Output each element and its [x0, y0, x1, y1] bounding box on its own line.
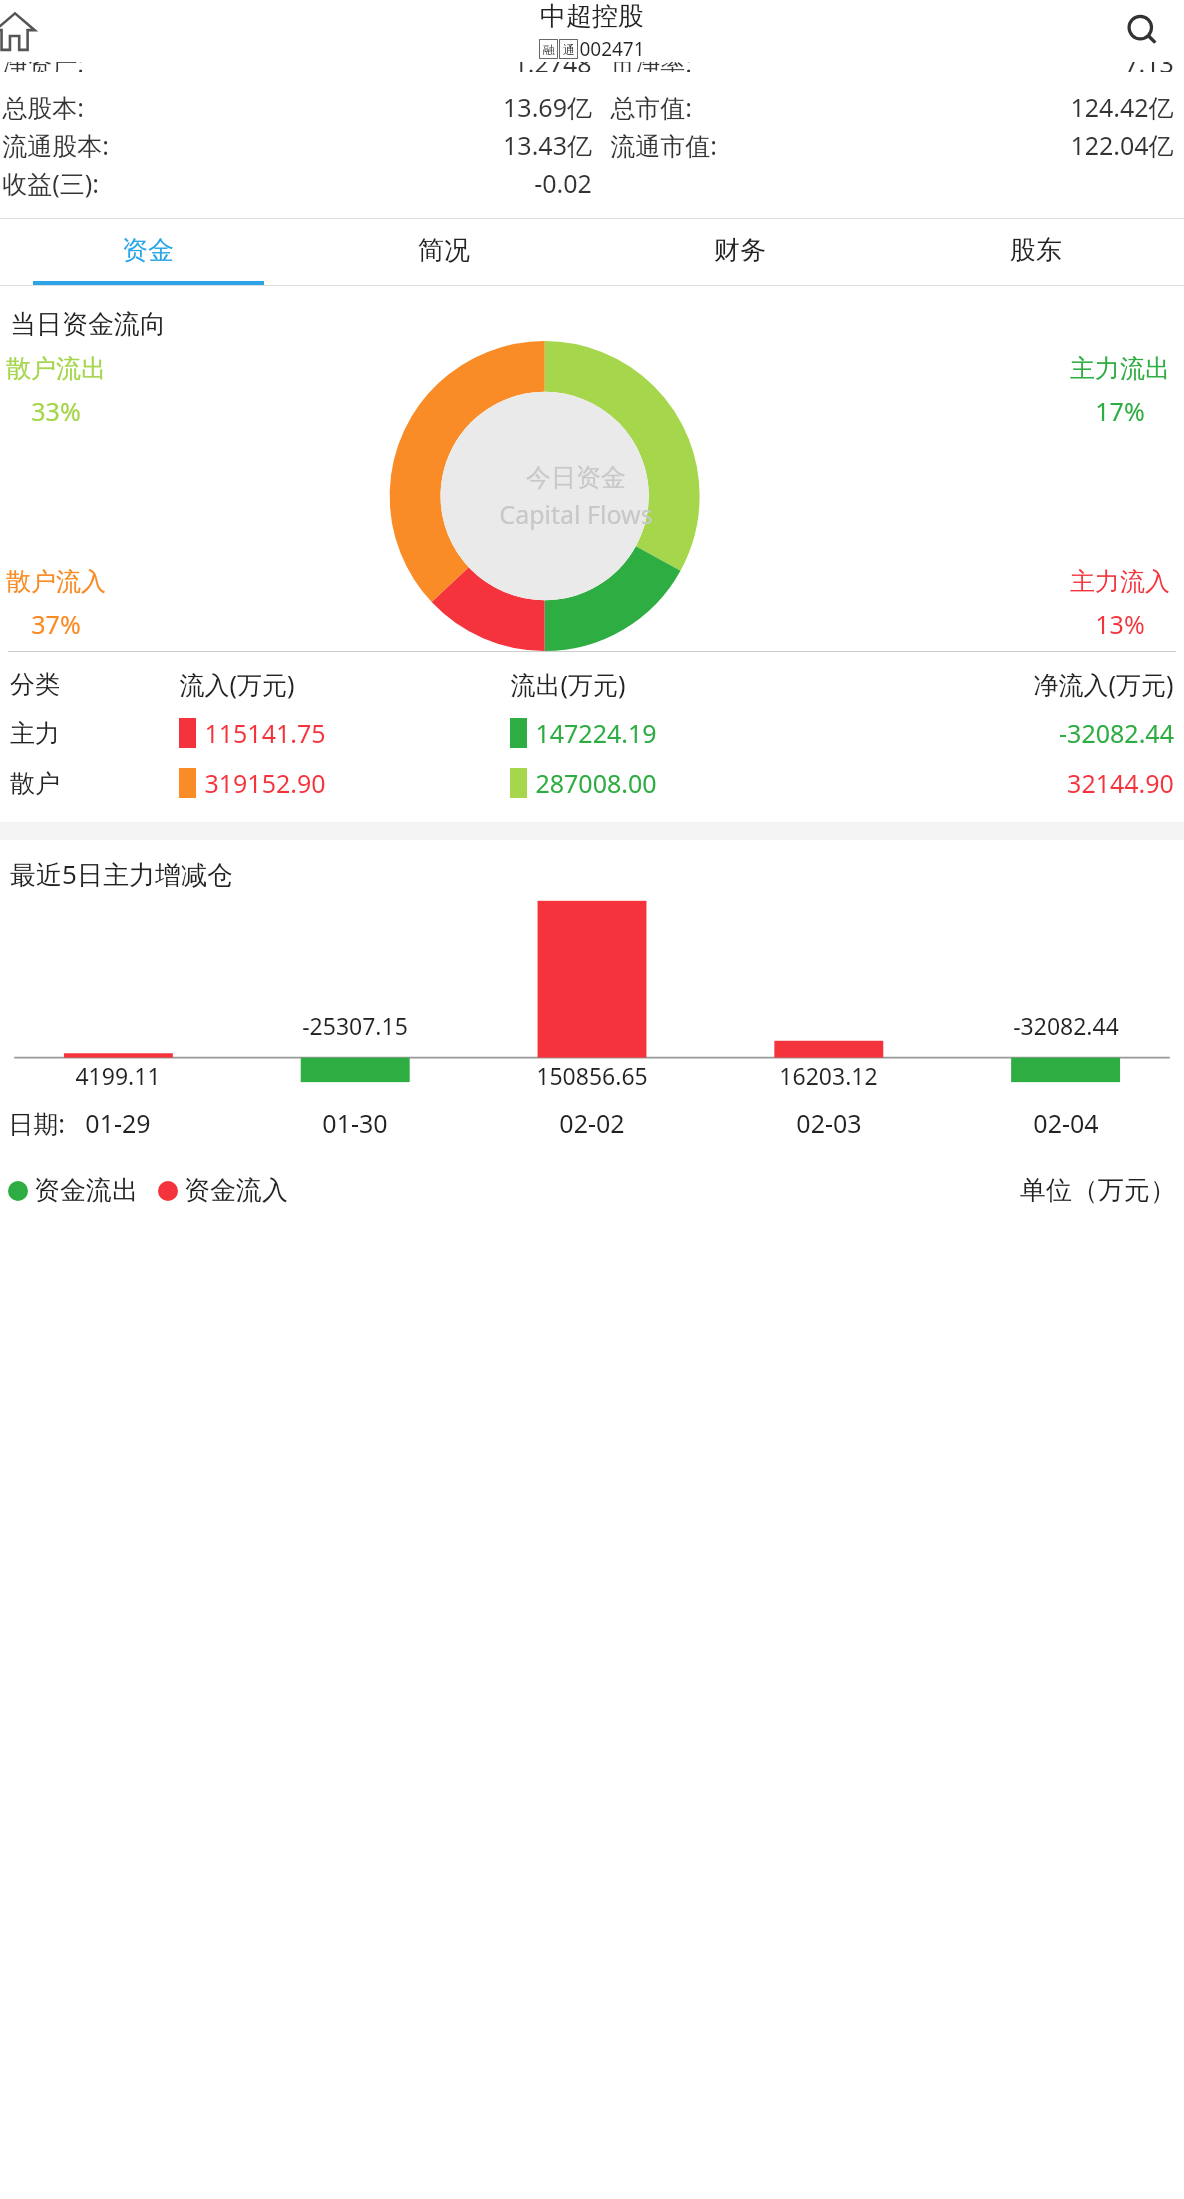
staticText: 日期: [8, 1106, 65, 1140]
staticText: 资金流入 [184, 1174, 288, 1207]
staticText: 主力 [10, 718, 60, 749]
staticText: 33% [31, 394, 81, 428]
button[interactable]: 股东 [888, 219, 1184, 281]
staticText: 财务 [714, 234, 766, 267]
staticText: 147224.19 [535, 716, 657, 750]
staticText: 简况 [418, 234, 470, 267]
staticText: 01-29 [85, 1106, 151, 1140]
staticText: 13% [1095, 607, 1145, 641]
staticText: -32082.44 [1013, 1010, 1119, 1041]
staticText: 今日资金 [526, 462, 626, 493]
button[interactable]: 资金流出 [8, 1174, 138, 1207]
staticText: 7.13 [1124, 62, 1174, 72]
staticText: 319152.90 [204, 766, 326, 800]
staticText: 287008.00 [535, 766, 657, 800]
staticText: 37% [31, 607, 81, 641]
staticText: 002471 [579, 36, 645, 62]
staticText: -32082.44 [1059, 716, 1174, 750]
staticText: 散户流入 [6, 566, 106, 597]
button[interactable]: 资金流入 [158, 1174, 288, 1207]
staticText: 02-03 [796, 1106, 862, 1140]
staticText: Capital Flows [499, 497, 653, 531]
staticText: 1.2748 [513, 62, 592, 72]
staticText: 净流入(万元) [1033, 667, 1174, 701]
staticText: 散户 [10, 768, 60, 799]
staticText: 单位（万元） [1020, 1174, 1176, 1207]
staticText: 32144.90 [1067, 766, 1174, 800]
staticText: 资金流出 [34, 1174, 138, 1207]
staticText: 分类 [10, 669, 60, 700]
staticText: 融 [543, 42, 555, 57]
staticText: 115141.75 [204, 716, 326, 750]
staticText: 净资产: [2, 62, 84, 72]
staticText: 股东 [1010, 234, 1062, 267]
staticText: 收益(三): [2, 166, 99, 200]
staticText: 流入(万元) [179, 667, 295, 701]
button[interactable]: Home [0, 2, 44, 60]
button[interactable]: 资金 [0, 219, 296, 281]
staticText: -25307.15 [302, 1010, 408, 1041]
button[interactable]: Search [1120, 8, 1166, 54]
staticText: -0.02 [534, 166, 592, 200]
button[interactable]: 财务 [592, 219, 888, 281]
staticText: 13.43亿 [503, 128, 592, 162]
staticText: 主力流出 [1070, 353, 1170, 384]
staticText: 当日资金流向 [10, 308, 166, 341]
staticText: 4199.11 [75, 1060, 161, 1091]
staticText: 通 [563, 42, 575, 57]
staticText: 17% [1095, 394, 1145, 428]
button[interactable]: 主力 [0, 708, 1184, 758]
button[interactable]: 简况 [296, 219, 592, 281]
staticText: 流出(万元) [510, 667, 626, 701]
staticText: 主力流入 [1070, 566, 1170, 597]
staticText: 中超控股 [540, 0, 644, 33]
staticText: 16203.12 [779, 1060, 878, 1091]
staticText: 流通股本: [2, 128, 109, 162]
staticText: 02-04 [1033, 1106, 1099, 1140]
button[interactable]: 散户 [0, 758, 1184, 808]
staticText: 150856.65 [536, 1060, 648, 1091]
staticText: 02-02 [559, 1106, 625, 1140]
staticText: 总股本: [2, 90, 84, 124]
staticText: 13.69亿 [503, 90, 592, 124]
staticText: 总市值: [610, 90, 692, 124]
staticText: 最近5日主力增减仓 [10, 856, 233, 892]
staticText: 散户流出 [6, 353, 106, 384]
staticText: 市净率: [610, 62, 692, 72]
staticText: 124.42亿 [1070, 90, 1174, 124]
staticText: 122.04亿 [1070, 128, 1174, 162]
staticText: 01-30 [322, 1106, 388, 1140]
staticText: 资金 [122, 234, 174, 267]
staticText: 流通市值: [610, 128, 717, 162]
